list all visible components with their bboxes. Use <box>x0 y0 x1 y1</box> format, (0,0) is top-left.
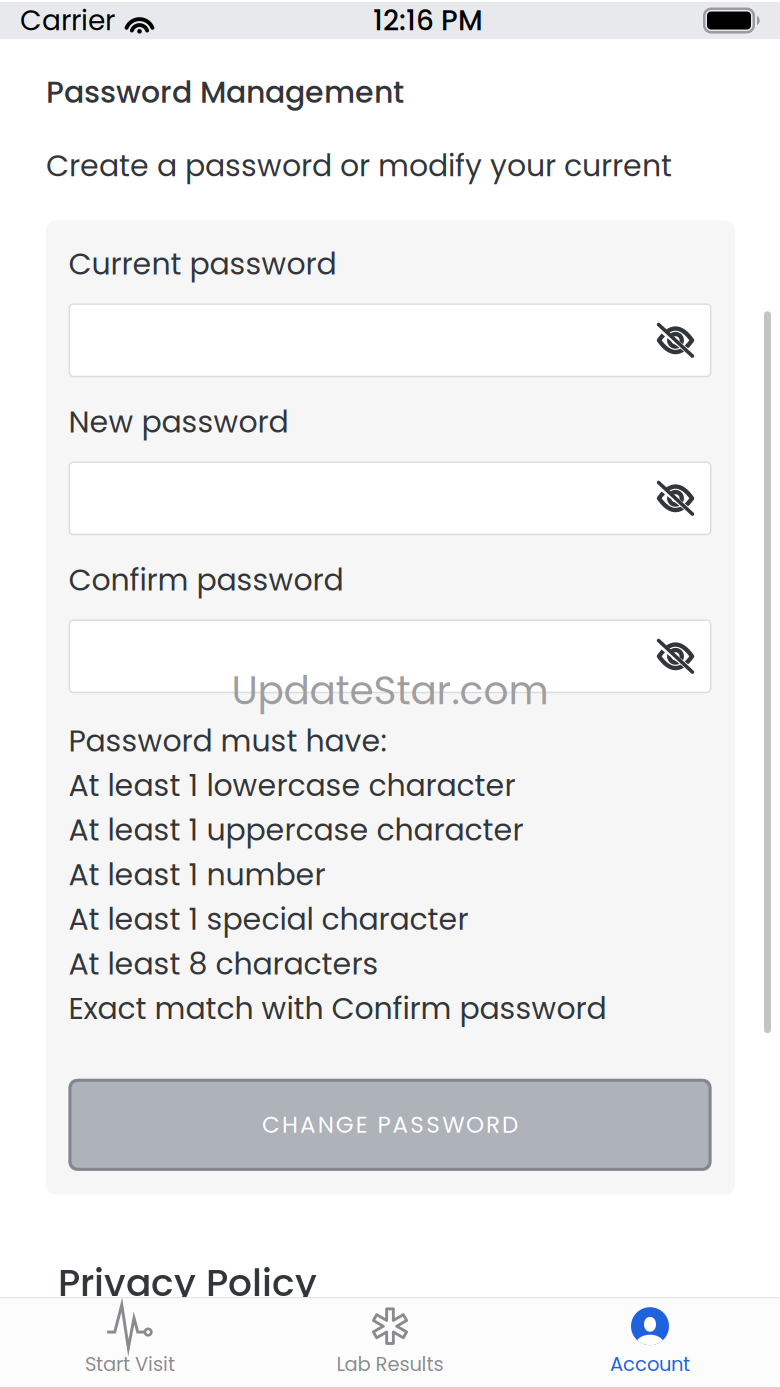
staticText: Password must have: <box>68 720 386 762</box>
staticText: Account <box>610 1351 690 1378</box>
staticText: Start Visit <box>85 1351 175 1378</box>
staticText: At least 8 characters <box>68 943 378 985</box>
button[interactable]: Show Confirm password <box>68 619 711 693</box>
staticText: Lab Results <box>336 1351 443 1378</box>
button[interactable]: Start Visit <box>0 1302 260 1378</box>
staticText: Exact match with Confirm password <box>68 987 606 1029</box>
staticText: At least 1 special character <box>68 898 468 940</box>
button[interactable]: Show New password <box>68 461 711 535</box>
staticText: Create a password or modify your current <box>46 145 672 187</box>
staticText: At least 1 number <box>68 854 325 896</box>
staticText: New password <box>68 401 288 443</box>
staticText: At least 1 lowercase character <box>68 764 515 806</box>
button[interactable]: Account <box>520 1302 780 1378</box>
button[interactable]: CHANGE PASSWORD <box>68 1079 711 1171</box>
staticText: UpdateStar.com <box>231 663 548 718</box>
staticText: Privacy Policy <box>58 1257 317 1309</box>
staticText: 12:16 PM <box>373 1 483 40</box>
staticText: Current password <box>68 243 336 285</box>
staticText: Confirm password <box>68 559 343 601</box>
staticText: Carrier <box>20 1 115 40</box>
button[interactable]: Lab Results <box>260 1302 520 1378</box>
staticText: CHANGE PASSWORD <box>262 1109 518 1141</box>
staticText: Password Management <box>46 71 404 113</box>
staticText: At least 1 uppercase character <box>68 809 523 851</box>
button[interactable]: Show Current password <box>68 303 711 377</box>
